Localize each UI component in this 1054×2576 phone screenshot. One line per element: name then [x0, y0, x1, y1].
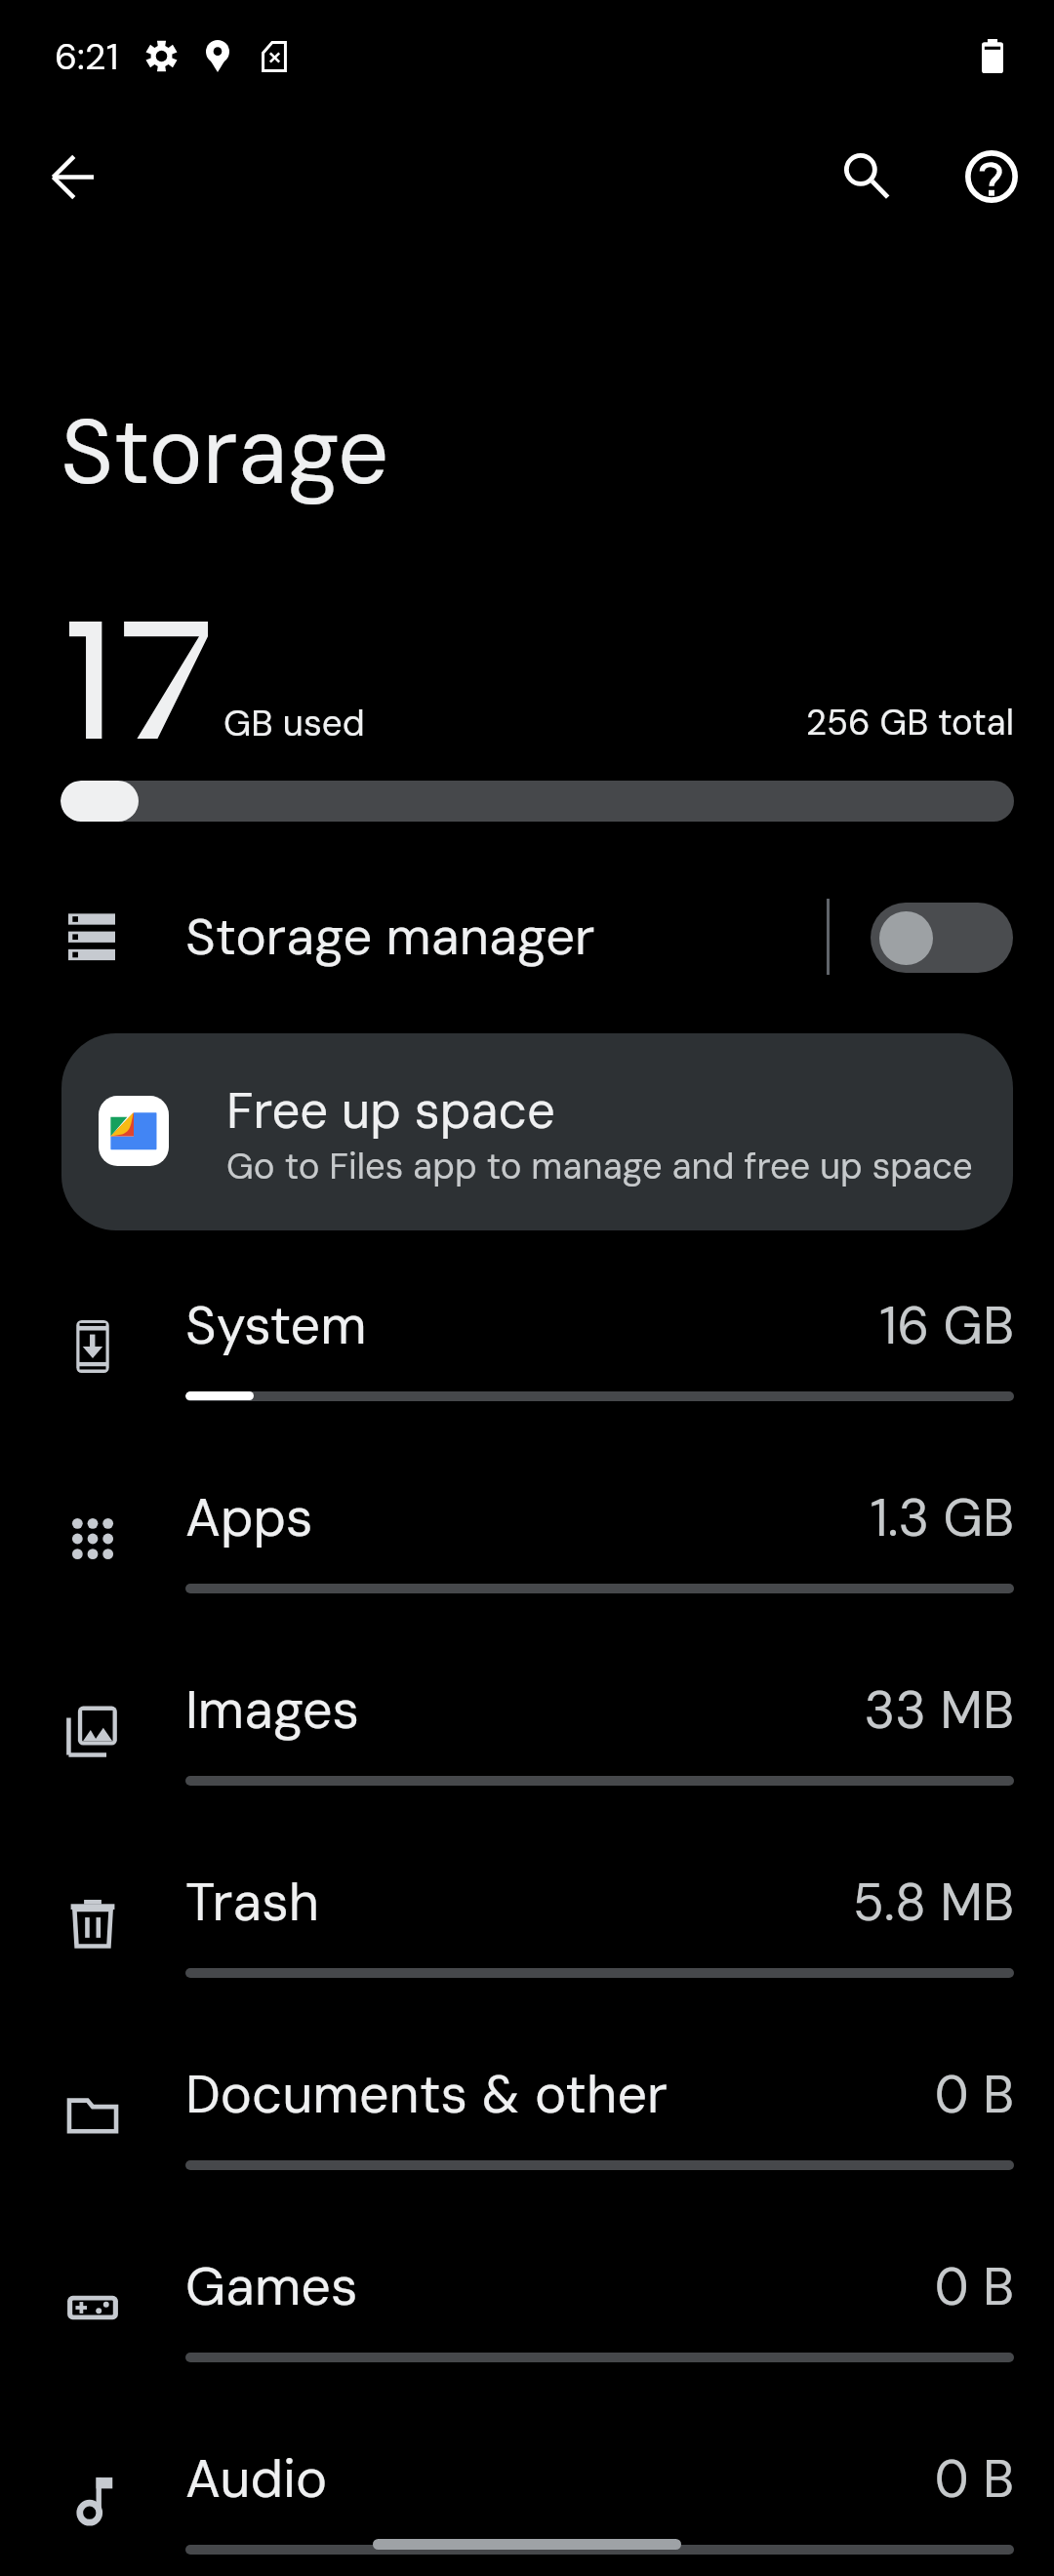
staticText: 1.3 GB — [0, 1484, 1014, 1551]
staticText: 6:21 — [55, 33, 119, 80]
button[interactable]: Documents & other — [0, 2053, 1054, 2245]
staticText: Apps — [185, 1483, 313, 1551]
staticText: Games — [185, 2252, 358, 2320]
staticText: Trash — [185, 1868, 320, 1936]
staticText: Go to Files app to manage and free up sp… — [226, 1144, 973, 1190]
staticText: 33 MB — [0, 1676, 1014, 1744]
staticText: 5.8 MB — [0, 1869, 1014, 1936]
button[interactable]: Games — [0, 2245, 1054, 2437]
staticText: 0 B — [0, 2253, 1014, 2320]
staticText: Documents & other — [185, 2060, 669, 2128]
staticText: Images — [185, 1675, 360, 1744]
button[interactable]: Search — [815, 124, 920, 229]
button[interactable]: Storage manager — [0, 874, 1054, 1003]
staticText: 0 B — [0, 2061, 1014, 2128]
staticText: Storage — [61, 393, 389, 510]
staticText: 16 GB — [0, 1292, 1014, 1359]
staticText: GB used — [223, 700, 365, 746]
button[interactable]: Free up space — [61, 1033, 1013, 1230]
staticText: 256 GB total — [0, 700, 1014, 745]
button[interactable]: Audio — [0, 2437, 1054, 2576]
staticText: 0 B — [0, 2445, 1014, 2513]
staticText: System — [185, 1291, 367, 1359]
staticText: Free up space — [226, 1078, 555, 1143]
button[interactable]: Apps — [0, 1476, 1054, 1669]
button[interactable]: Navigate up — [20, 124, 125, 229]
button[interactable]: Storage manager — [871, 903, 1013, 973]
staticText: Storage manager — [185, 904, 595, 970]
button[interactable]: Help — [939, 124, 1044, 229]
staticText: Audio — [185, 2444, 328, 2513]
button[interactable]: System — [0, 1284, 1054, 1476]
button[interactable]: Images — [0, 1669, 1054, 1861]
button[interactable]: Trash — [0, 1861, 1054, 2053]
